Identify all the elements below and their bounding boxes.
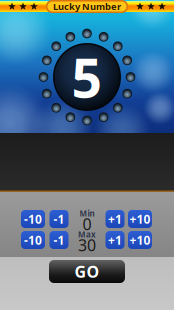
staticText: Lucky Number — [53, 0, 121, 13]
staticText: -10 — [24, 232, 42, 248]
staticText: +1 — [108, 211, 122, 227]
button[interactable]: -10 — [21, 210, 45, 228]
button[interactable]: +10 — [128, 210, 152, 228]
staticText: -10 — [24, 211, 42, 227]
staticText: Min — [79, 208, 94, 219]
staticText: -1 — [53, 232, 64, 248]
button[interactable]: -1 — [49, 231, 68, 249]
staticText: Max — [78, 229, 96, 240]
button[interactable]: +10 — [128, 231, 152, 249]
staticText: 0 — [82, 213, 91, 235]
button[interactable]: GO — [49, 260, 125, 283]
staticText: +1 — [108, 232, 122, 248]
staticText: 5 — [71, 42, 102, 112]
staticText: +10 — [129, 211, 150, 227]
staticText: -1 — [53, 211, 64, 227]
button[interactable]: -10 — [21, 231, 45, 249]
staticText: +10 — [129, 232, 150, 248]
button[interactable]: +1 — [105, 210, 124, 228]
button[interactable]: +1 — [105, 231, 124, 249]
button[interactable]: -1 — [49, 210, 68, 228]
staticText: GO — [74, 261, 99, 282]
staticText: 30 — [78, 234, 96, 256]
